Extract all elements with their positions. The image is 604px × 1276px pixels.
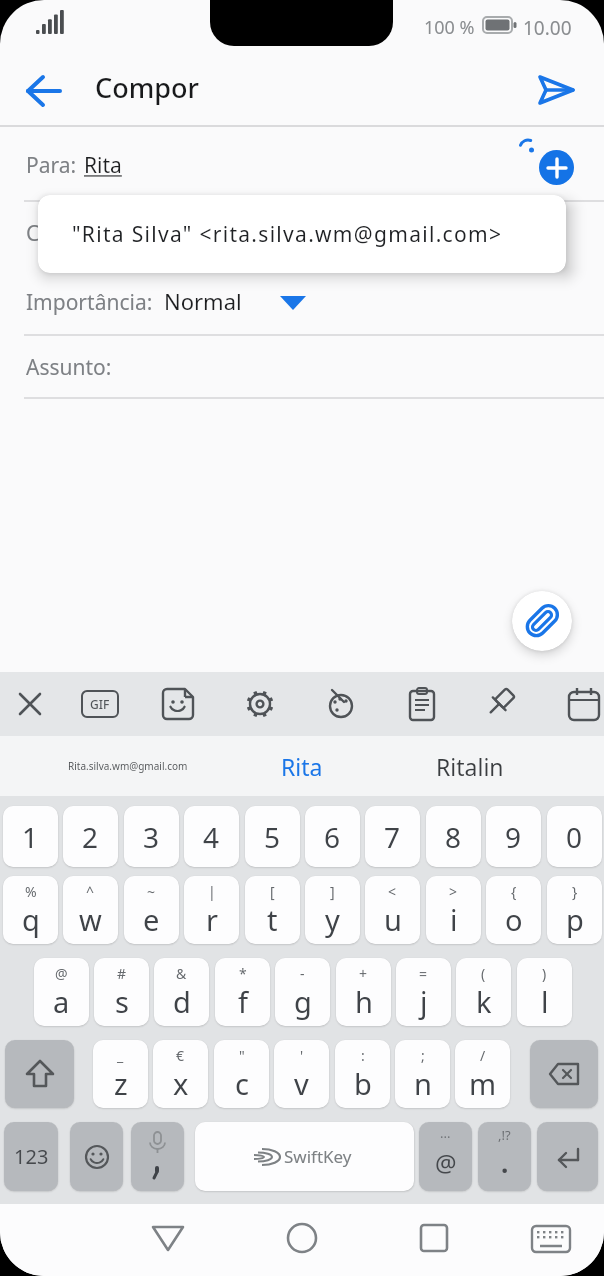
- button[interactable]: ^: [63, 876, 118, 944]
- button[interactable]: [537, 1122, 598, 1191]
- button[interactable]: Rita: [202, 736, 402, 796]
- button[interactable]: [12, 686, 48, 722]
- button[interactable]: :: [335, 1040, 390, 1108]
- button[interactable]: [70, 1122, 123, 1191]
- button[interactable]: [530, 1040, 598, 1108]
- button[interactable]: ~: [124, 876, 179, 944]
- button[interactable]: GIF: [81, 690, 119, 718]
- staticText: ^: [86, 882, 95, 901]
- button[interactable]: [523, 1210, 579, 1266]
- button[interactable]: [160, 686, 196, 722]
- button[interactable]: Rita.silva.wm@gmail.com: [28, 736, 228, 796]
- staticText: r: [206, 900, 218, 939]
- button[interactable]: {: [486, 876, 541, 944]
- staticText: }: [572, 882, 578, 901]
- button[interactable]: 123: [4, 1122, 58, 1191]
- button[interactable]: 6: [305, 806, 360, 867]
- button[interactable]: 5: [245, 806, 300, 867]
- button[interactable]: ": [214, 1040, 269, 1108]
- button[interactable]: [404, 686, 440, 722]
- button[interactable]: 2: [63, 806, 118, 867]
- staticText: 6: [324, 818, 341, 856]
- button[interactable]: _: [93, 1040, 148, 1108]
- staticText: Importância:: [26, 288, 153, 317]
- button[interactable]: <: [365, 876, 420, 944]
- button[interactable]: #: [94, 958, 149, 1026]
- button[interactable]: [5, 1040, 74, 1108]
- staticText: -: [300, 964, 305, 983]
- staticText: a: [53, 982, 70, 1021]
- button[interactable]: [140, 1210, 196, 1266]
- staticText: l: [541, 982, 549, 1021]
- staticText: o: [505, 900, 523, 939]
- staticText: &: [176, 964, 187, 983]
- button[interactable]: [274, 1210, 330, 1266]
- staticText: c: [235, 1064, 249, 1103]
- button[interactable]: 3: [124, 806, 179, 867]
- button[interactable]: €: [153, 1040, 208, 1108]
- staticText: 8: [445, 818, 462, 856]
- staticText: =: [419, 964, 428, 983]
- button[interactable]: [539, 150, 574, 185]
- button[interactable]: |: [184, 876, 239, 944]
- staticText: ;: [421, 1046, 425, 1065]
- staticText: Compor: [95, 69, 199, 106]
- staticText: Rita: [281, 751, 323, 782]
- staticText: Ritalin: [436, 751, 504, 782]
- staticText: 7: [384, 818, 401, 856]
- button[interactable]: 7: [365, 806, 420, 867]
- button[interactable]: *: [215, 958, 270, 1026]
- button[interactable]: 1: [3, 806, 58, 867]
- button[interactable]: 0: [547, 806, 602, 867]
- button[interactable]: [: [245, 876, 300, 944]
- staticText: 2: [82, 818, 99, 856]
- button[interactable]: -: [275, 958, 330, 1026]
- staticText: _: [117, 1046, 124, 1065]
- button[interactable]: [406, 1210, 462, 1266]
- staticText: *: [239, 964, 247, 983]
- button[interactable]: =: [396, 958, 451, 1026]
- button[interactable]: [512, 591, 572, 651]
- staticText: z: [114, 1064, 128, 1103]
- staticText: g: [294, 982, 312, 1021]
- button[interactable]: (: [456, 958, 511, 1026]
- button[interactable]: 4: [184, 806, 239, 867]
- staticText: 100 %: [424, 15, 475, 40]
- staticText: n: [414, 1064, 432, 1103]
- staticText: 1: [22, 818, 39, 856]
- staticText: b: [354, 1064, 372, 1103]
- button[interactable]: ): [517, 958, 572, 1026]
- button[interactable]: ;: [395, 1040, 450, 1108]
- staticText: w: [79, 900, 102, 939]
- button[interactable]: [131, 1122, 184, 1191]
- button[interactable]: [18, 70, 70, 114]
- button[interactable]: ...: [419, 1122, 472, 1191]
- button[interactable]: %: [3, 876, 58, 944]
- staticText: GIF: [90, 696, 110, 712]
- button[interactable]: ]: [305, 876, 360, 944]
- staticText: €: [176, 1046, 185, 1065]
- button[interactable]: [324, 686, 360, 722]
- button[interactable]: ,!?: [478, 1122, 531, 1191]
- button[interactable]: ': [274, 1040, 329, 1108]
- button[interactable]: }: [547, 876, 602, 944]
- button[interactable]: 8: [426, 806, 481, 867]
- button[interactable]: [566, 686, 602, 722]
- button[interactable]: /: [455, 1040, 510, 1108]
- button[interactable]: [484, 686, 520, 722]
- staticText: m: [469, 1064, 497, 1103]
- button[interactable]: +: [336, 958, 391, 1026]
- staticText: d: [173, 982, 191, 1021]
- staticText: e: [143, 900, 160, 939]
- button[interactable]: SwiftKey: [195, 1122, 414, 1191]
- button[interactable]: &: [154, 958, 209, 1026]
- staticText: [: [270, 882, 275, 901]
- button[interactable]: "Rita Silva" <rita.silva.wm@gmail.com>: [38, 195, 566, 273]
- button[interactable]: [528, 66, 584, 112]
- staticText: f: [238, 982, 248, 1021]
- button[interactable]: @: [34, 958, 89, 1026]
- button[interactable]: >: [426, 876, 481, 944]
- button[interactable]: [242, 686, 278, 722]
- button[interactable]: Ritalin: [370, 736, 570, 796]
- button[interactable]: 9: [486, 806, 541, 867]
